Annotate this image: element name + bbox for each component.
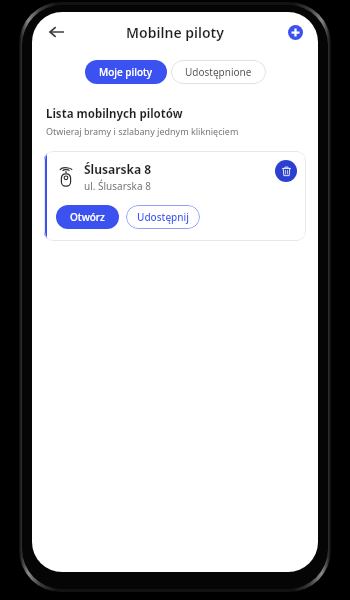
staticText: Udostępnij	[137, 210, 189, 224]
staticText: Ślusarska 8	[84, 161, 152, 177]
staticText: Lista mobilnych pilotów	[46, 106, 183, 122]
staticText: ul. Ślusarska 8	[84, 179, 151, 193]
button[interactable]: Add remote	[282, 19, 308, 45]
button[interactable]: Ślusarska 8	[44, 151, 306, 241]
button[interactable]: Udostępnione	[171, 60, 266, 84]
button[interactable]: Otwórz	[56, 205, 119, 229]
button[interactable]: Delete	[275, 160, 297, 182]
button[interactable]: Back	[42, 17, 72, 47]
staticText: Otwieraj bramy i szlabany jednym kliknię…	[46, 125, 239, 137]
staticText: Moje piloty	[99, 65, 153, 79]
button[interactable]: Moje piloty	[85, 60, 167, 84]
staticText: Otwórz	[70, 210, 105, 224]
button[interactable]: Udostępnij	[126, 205, 200, 229]
staticText: Udostępnione	[185, 65, 252, 79]
staticText: Mobilne piloty	[126, 23, 224, 42]
